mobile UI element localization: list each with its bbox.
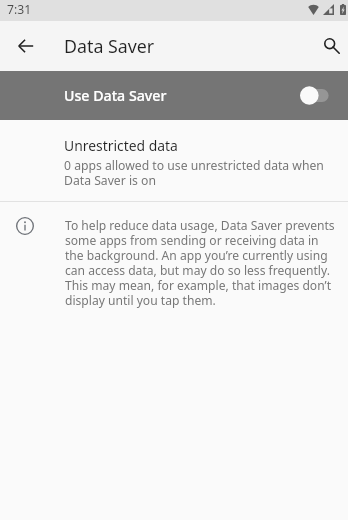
staticText: 7:31	[7, 1, 32, 18]
button[interactable]: Unrestricted data	[0, 129, 348, 198]
button[interactable]: Use Data Saver	[0, 71, 348, 120]
staticText: 0 apps allowed to use unrestricted data …	[64, 157, 332, 188]
staticText: To help reduce data usage, Data Saver pr…	[65, 217, 338, 308]
staticText: Unrestricted data	[64, 136, 178, 155]
button[interactable]: Navigate up	[6, 26, 46, 66]
staticText: Use Data Saver	[64, 86, 167, 105]
button[interactable]: Search	[308, 26, 348, 66]
staticText: Data Saver	[64, 34, 155, 58]
